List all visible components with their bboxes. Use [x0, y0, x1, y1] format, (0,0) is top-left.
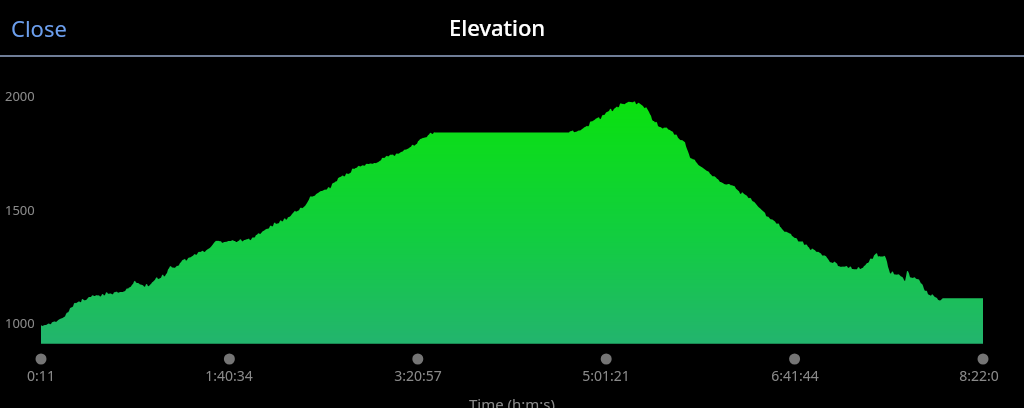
staticText: Close: [11, 13, 67, 43]
staticText: 1500: [5, 201, 35, 219]
staticText: 8:22:00: [913, 366, 999, 385]
staticText: 3:20:57: [348, 366, 488, 385]
staticText: Time (h:m:s): [0, 394, 1024, 408]
staticText: 6:41:44: [725, 366, 865, 385]
staticText: 1000: [5, 314, 35, 332]
staticText: 1:40:34: [159, 366, 299, 385]
staticText: 0:11: [0, 366, 111, 385]
staticText: 5:01:21: [536, 366, 676, 385]
staticText: 2000: [5, 87, 35, 105]
button[interactable]: Close: [1, 4, 77, 52]
staticText: Elevation: [449, 12, 546, 42]
